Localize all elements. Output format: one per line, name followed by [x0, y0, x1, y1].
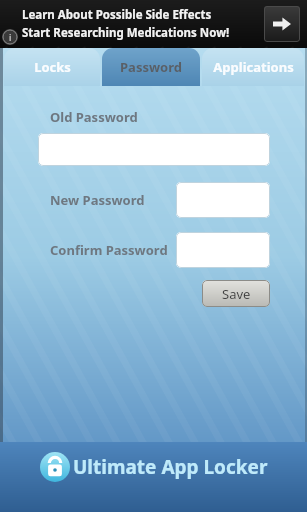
- button[interactable]: Learn About Possible Side Effects: [0, 0, 307, 48]
- button[interactable]: Password: [102, 48, 200, 86]
- staticText: Start Researching Medications Now!: [22, 25, 230, 41]
- staticText: Password: [120, 58, 182, 76]
- button[interactable]: Ad information: [2, 29, 18, 45]
- button[interactable]: Applications: [202, 48, 304, 86]
- button[interactable]: [176, 182, 270, 218]
- button[interactable]: [176, 232, 270, 268]
- button[interactable]: [38, 133, 270, 166]
- staticText: Applications: [213, 58, 294, 76]
- button[interactable]: Open advertisement: [264, 6, 300, 42]
- staticText: Old Password: [50, 108, 138, 126]
- staticText: Ultimate App Locker: [73, 454, 268, 480]
- button[interactable]: Locks: [4, 48, 100, 86]
- staticText: Save: [222, 285, 251, 303]
- staticText: Confirm Password: [50, 241, 168, 259]
- button[interactable]: Save: [202, 280, 270, 307]
- staticText: Locks: [34, 58, 71, 76]
- staticText: i: [9, 32, 12, 43]
- staticText: Learn About Possible Side Effects: [22, 7, 212, 23]
- staticText: New Password: [50, 191, 145, 209]
